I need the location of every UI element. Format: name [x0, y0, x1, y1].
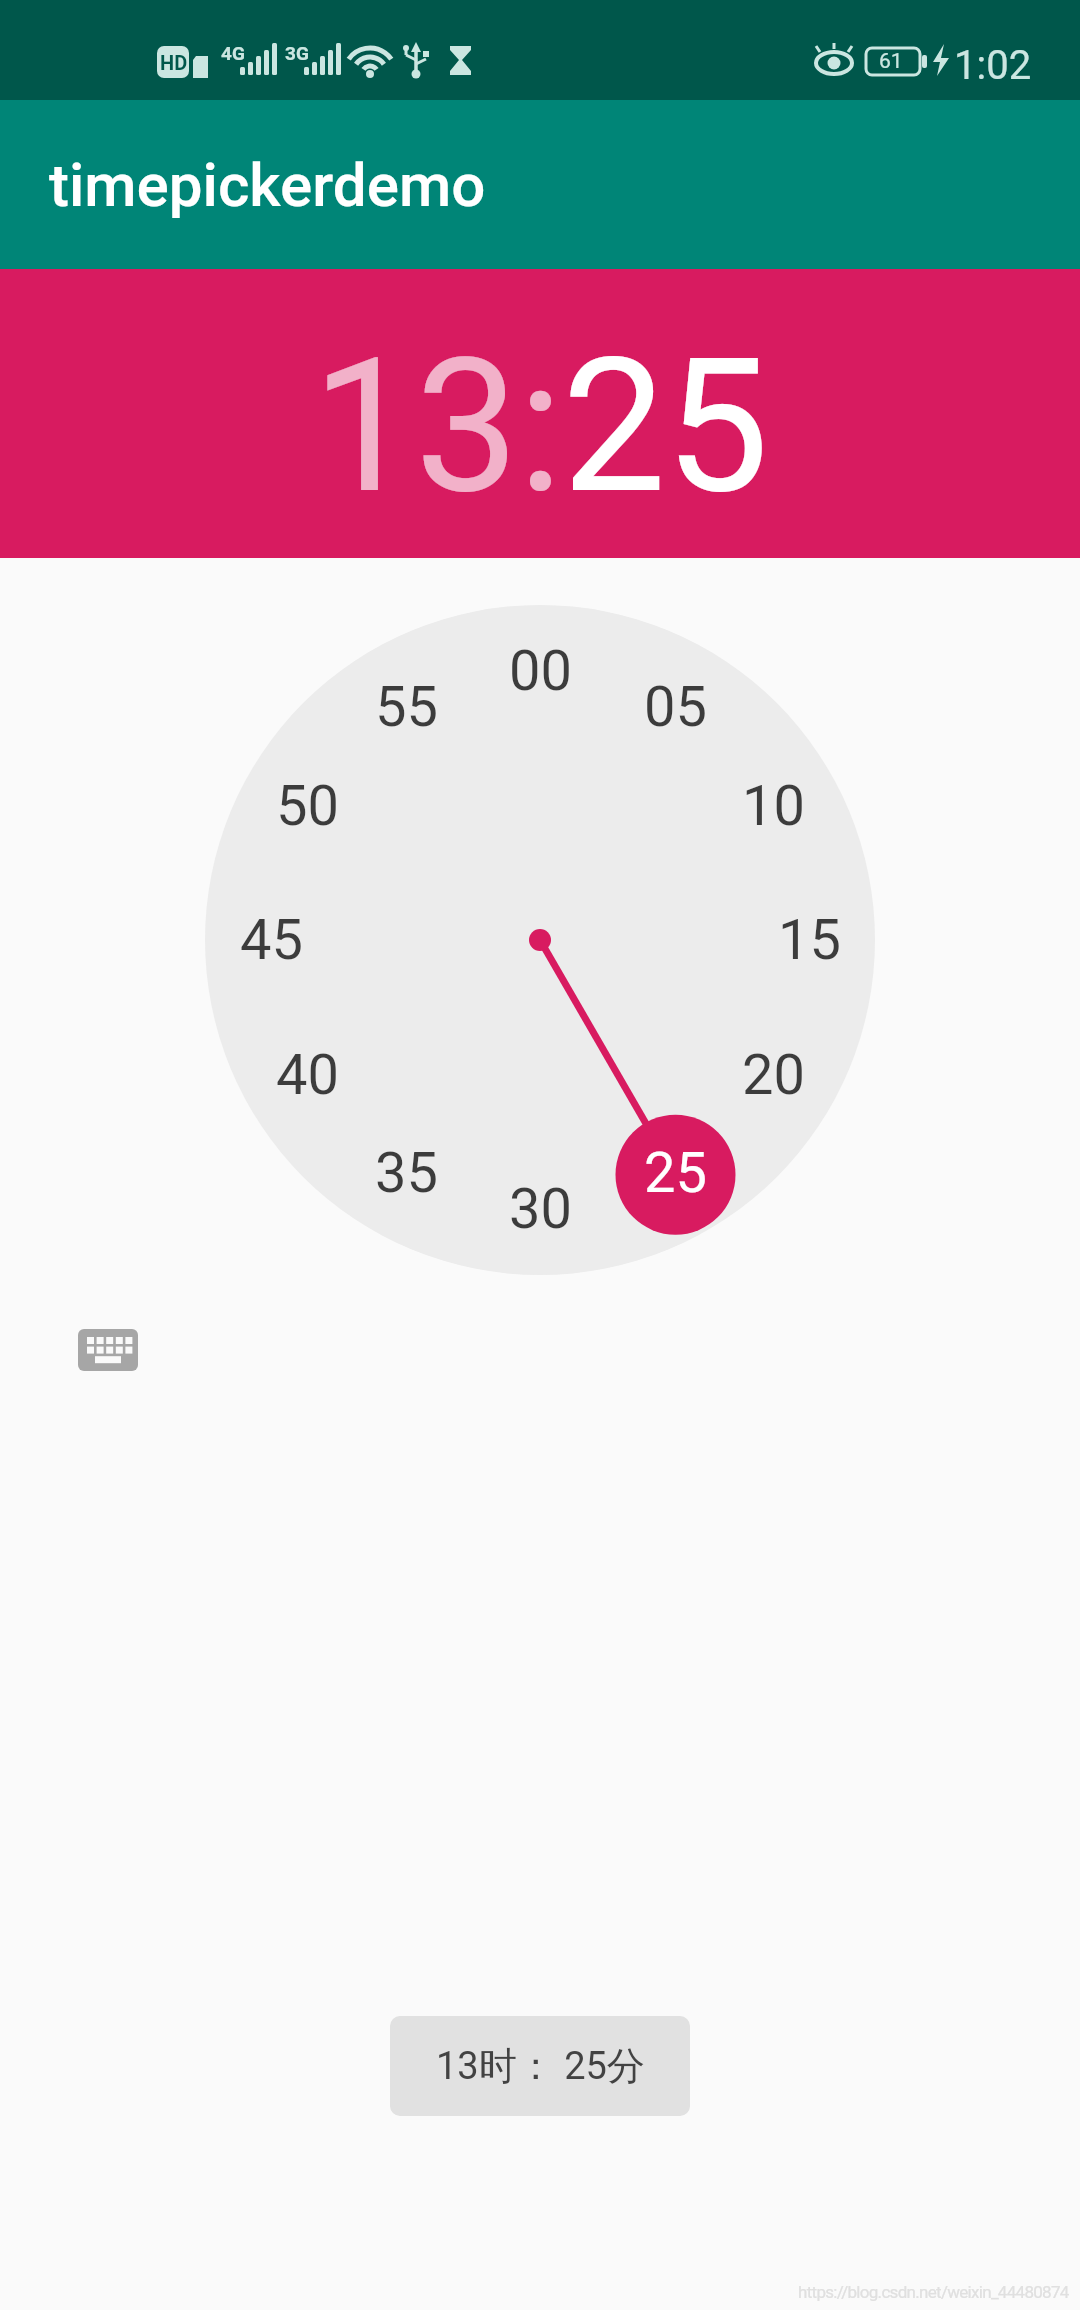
staticText: 13时： 25分: [436, 2042, 645, 2090]
button[interactable]: 15: [749, 895, 869, 985]
staticText: 00: [509, 638, 572, 704]
staticText: 30: [509, 1176, 572, 1242]
button[interactable]: 35: [346, 1128, 466, 1218]
staticText: https://blog.csdn.net/weixin_44480874: [798, 2282, 1069, 2302]
staticText: 3G: [285, 42, 309, 64]
staticText: 61: [879, 49, 903, 74]
button[interactable]: 40: [247, 1030, 367, 1120]
staticText: 25: [644, 1140, 707, 1206]
staticText: 55: [375, 674, 438, 740]
staticText: 50: [276, 773, 339, 839]
button[interactable]: 30: [480, 1164, 600, 1254]
staticText: 35: [375, 1140, 438, 1206]
button[interactable]: 50: [247, 761, 367, 851]
staticText: 20: [742, 1042, 805, 1108]
staticText: 15: [778, 907, 841, 973]
button[interactable]: 10: [713, 761, 833, 851]
button[interactable]: 00: [480, 626, 600, 716]
button[interactable]: 25: [615, 1128, 735, 1218]
staticText: timepickerdemo: [49, 150, 486, 220]
staticText: 05: [644, 674, 707, 740]
button[interactable]: 25: [562, 318, 768, 535]
button[interactable]: 55: [346, 662, 466, 752]
button[interactable]: 13:: [312, 318, 562, 535]
button[interactable]: 45: [211, 895, 331, 985]
staticText: 1:02: [954, 42, 1032, 89]
button[interactable]: 13时： 25分: [390, 2016, 690, 2116]
button[interactable]: 05: [615, 662, 735, 752]
staticText: 40: [276, 1042, 339, 1108]
staticText: 4G: [221, 42, 245, 64]
staticText: HD: [160, 51, 188, 74]
staticText: 10: [742, 773, 805, 839]
button[interactable]: 20: [713, 1030, 833, 1120]
staticText: 45: [240, 907, 303, 973]
button[interactable]: [62, 1313, 154, 1387]
